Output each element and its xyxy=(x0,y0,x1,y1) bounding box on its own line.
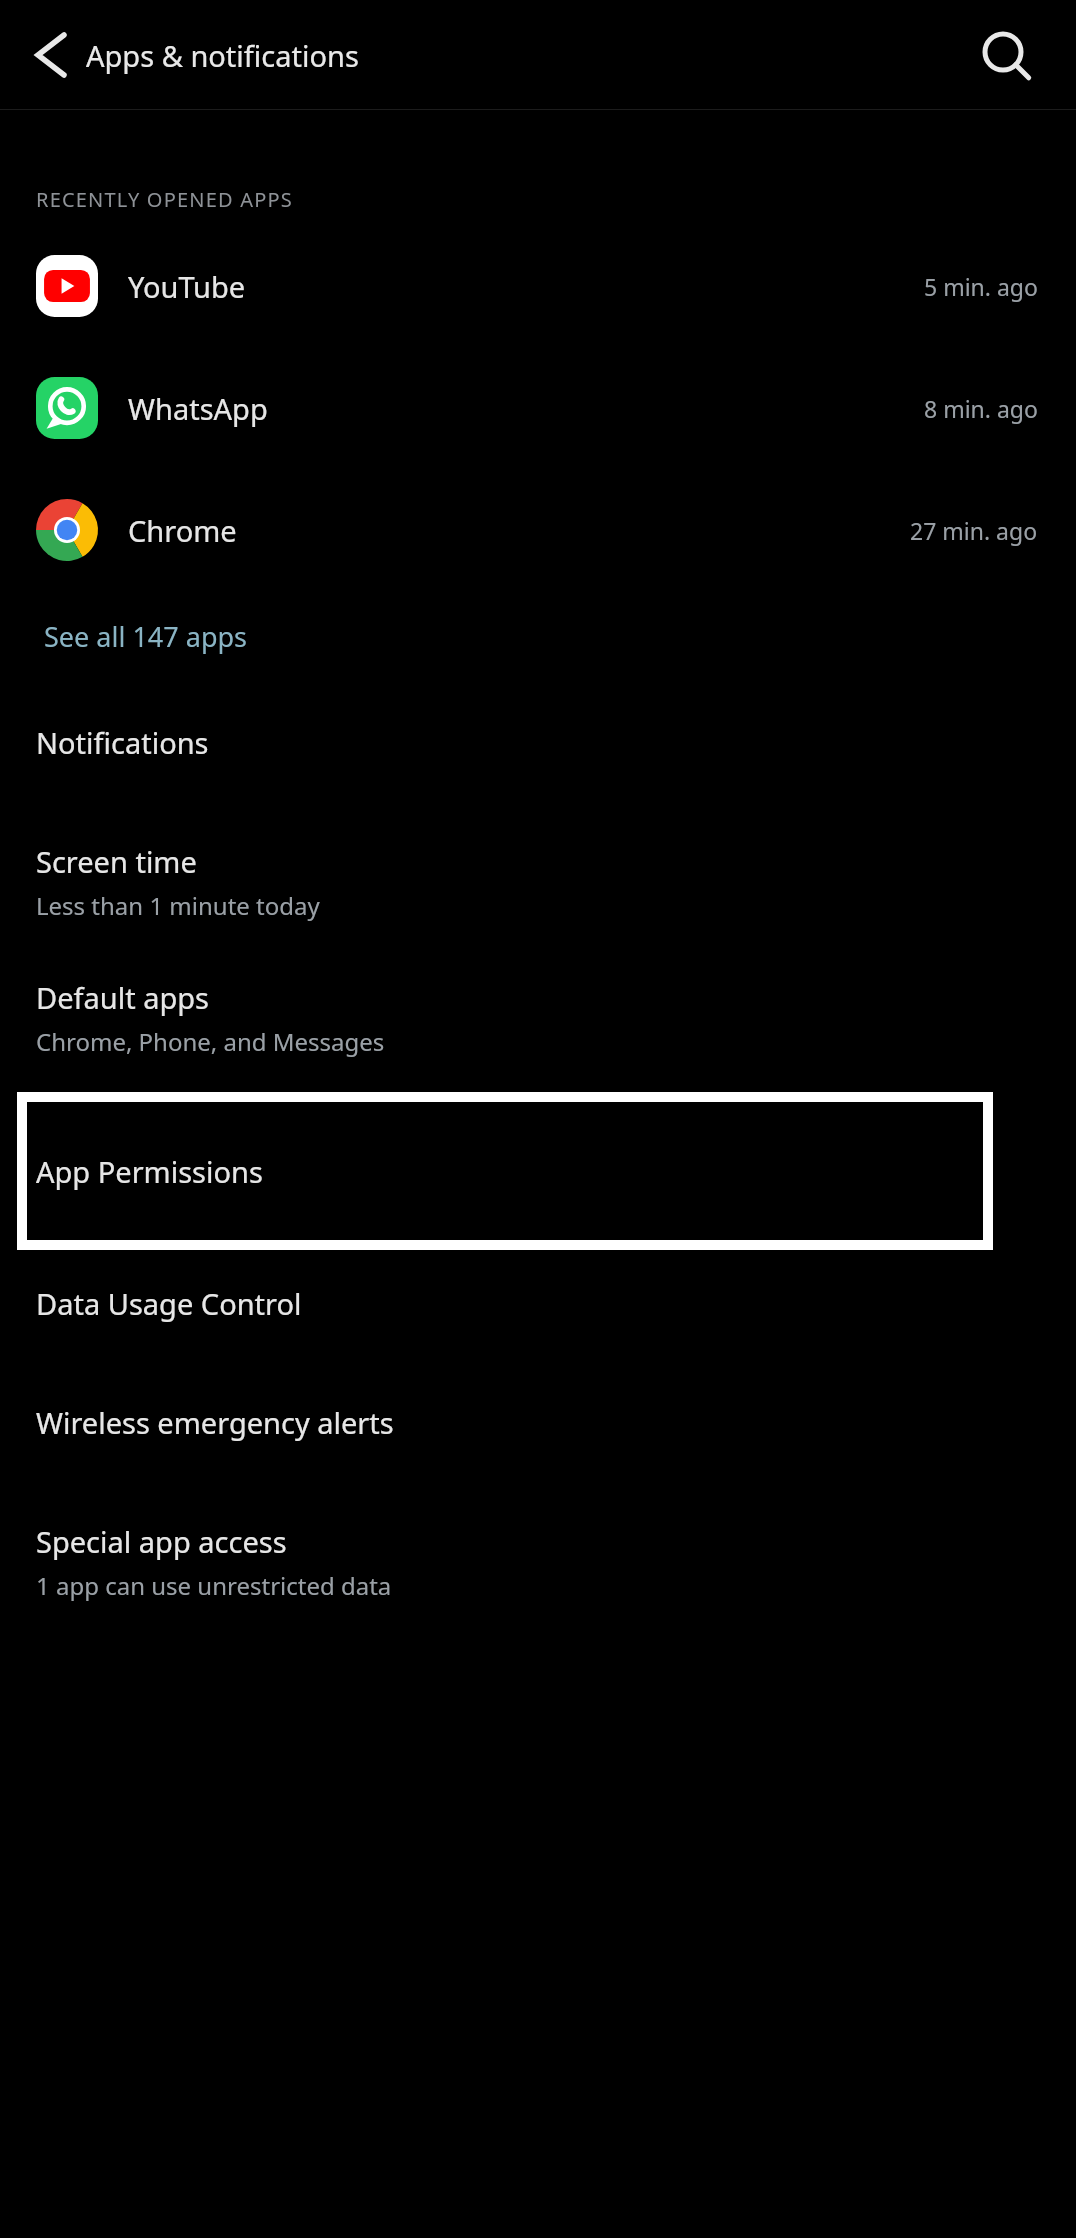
button[interactable]: Wireless emergency alerts xyxy=(0,1391,1076,1454)
staticText: Screen time xyxy=(36,842,197,881)
button[interactable]: WhatsApp xyxy=(0,371,1076,445)
staticText: Default apps xyxy=(36,978,210,1017)
staticText: Wireless emergency alerts xyxy=(36,1403,394,1442)
staticText: Chrome, Phone, and Messages xyxy=(36,1025,385,1058)
button[interactable]: Search xyxy=(974,23,1038,87)
staticText: 1 app can use unrestricted data xyxy=(36,1569,392,1602)
staticText: Data Usage Control xyxy=(36,1284,302,1323)
button[interactable]: Notifications xyxy=(0,711,1076,774)
button[interactable]: App Permissions xyxy=(17,1092,993,1250)
button[interactable]: Data Usage Control xyxy=(0,1272,1076,1335)
staticText: 27 min. ago xyxy=(910,515,1038,546)
staticText: See all 147 apps xyxy=(44,618,248,655)
staticText: Chrome xyxy=(128,511,237,550)
staticText: YouTube xyxy=(128,267,246,306)
button[interactable]: See all 147 apps xyxy=(0,606,1076,667)
staticText: 8 min. ago xyxy=(924,393,1038,424)
staticText: Special app access xyxy=(36,1522,287,1561)
staticText: Apps & notifications xyxy=(86,36,359,75)
staticText: App Permissions xyxy=(36,1152,263,1191)
staticText: Less than 1 minute today xyxy=(36,889,320,922)
staticText: Notifications xyxy=(36,723,209,762)
button[interactable]: Special app access xyxy=(0,1510,1076,1614)
staticText: RECENTLY OPENED APPS xyxy=(36,186,293,213)
button[interactable]: Default apps xyxy=(0,966,1076,1070)
button[interactable]: YouTube xyxy=(0,249,1076,323)
button[interactable]: Screen time xyxy=(0,830,1076,934)
staticText: WhatsApp xyxy=(128,389,268,428)
staticText: 5 min. ago xyxy=(924,271,1038,302)
button[interactable]: Chrome xyxy=(0,493,1076,567)
button[interactable]: Back xyxy=(14,20,84,90)
